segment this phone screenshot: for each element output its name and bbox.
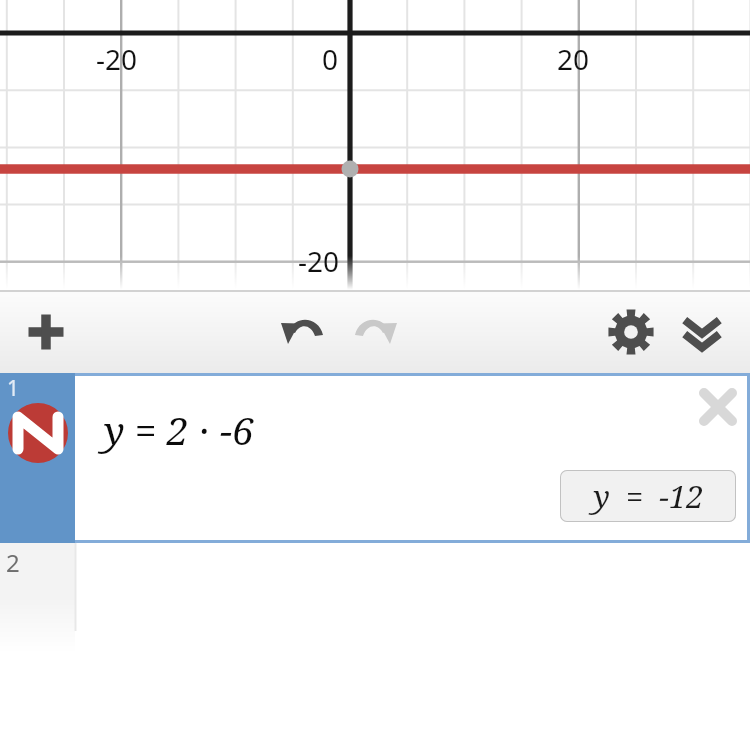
button[interactable]: Collapse list xyxy=(666,290,738,373)
staticText: 2 xyxy=(6,546,20,579)
button[interactable]: Undo xyxy=(267,290,339,373)
button[interactable]: y = −12 xyxy=(560,470,736,522)
staticText: -20 xyxy=(96,40,138,78)
button[interactable]: Redo xyxy=(339,290,411,373)
button[interactable]: 1 xyxy=(0,373,750,543)
staticText: 0 xyxy=(322,40,339,78)
staticText: y = 2 · −6 xyxy=(104,403,254,456)
staticText: -20 xyxy=(298,242,340,280)
button[interactable]: Delete expression xyxy=(694,383,742,431)
button[interactable]: 2 xyxy=(0,543,750,653)
staticText: 20 xyxy=(557,40,590,78)
staticText: y = −12 xyxy=(593,475,704,517)
staticText: 1 xyxy=(7,374,20,403)
button[interactable]: Settings xyxy=(595,290,667,373)
button[interactable]: Add expression xyxy=(10,290,82,373)
